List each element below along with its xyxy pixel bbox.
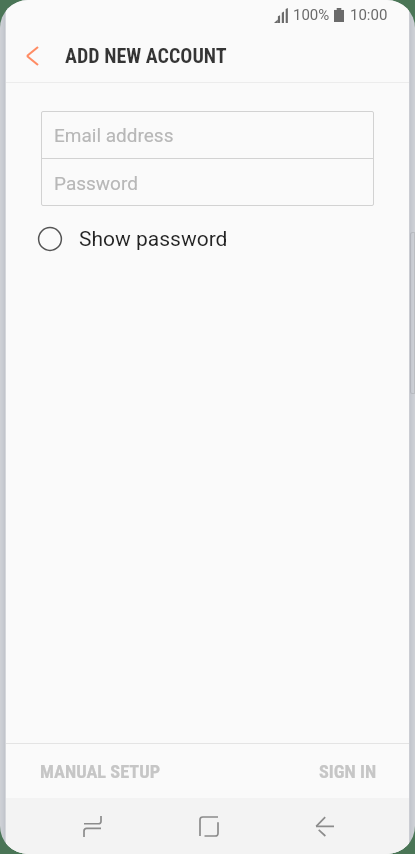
button[interactable]: Back <box>267 798 383 854</box>
button[interactable]: Recent apps <box>34 798 151 854</box>
staticText: Email address <box>54 124 174 146</box>
button[interactable]: Home <box>151 798 267 854</box>
button[interactable]: Show password <box>35 222 368 256</box>
button[interactable]: SIGN IN <box>287 747 409 796</box>
staticText: 100% <box>293 6 330 24</box>
staticText: 10:00 <box>350 6 388 24</box>
button[interactable]: Email address <box>41 111 374 158</box>
button[interactable]: Navigate up <box>13 37 51 75</box>
staticText: ADD NEW ACCOUNT <box>65 44 227 67</box>
staticText: MANUAL SETUP <box>40 761 161 782</box>
button[interactable]: MANUAL SETUP <box>6 747 195 796</box>
button[interactable]: Password <box>41 159 374 206</box>
staticText: Password <box>54 172 138 194</box>
staticText: Show password <box>79 227 228 252</box>
staticText: SIGN IN <box>319 761 377 782</box>
